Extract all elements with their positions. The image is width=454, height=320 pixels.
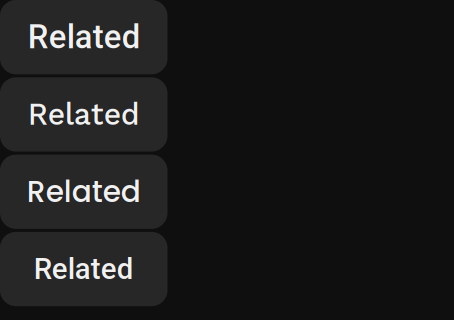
staticText: Related	[34, 252, 134, 286]
staticText: Related	[28, 18, 140, 56]
staticText: Related	[28, 97, 140, 132]
staticText: Related	[27, 171, 141, 212]
